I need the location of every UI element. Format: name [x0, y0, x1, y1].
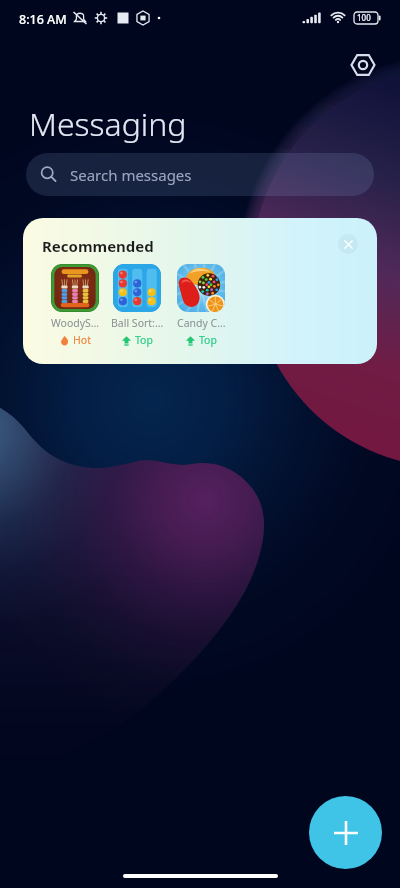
staticText: Recommended: [42, 236, 154, 256]
button[interactable]: Settings: [342, 44, 384, 86]
button[interactable]: WoodyS…: [39, 264, 111, 347]
staticText: Search messages: [70, 165, 192, 185]
staticText: 8:16 AM: [19, 11, 67, 28]
button[interactable]: Dismiss: [338, 234, 358, 254]
staticText: WoodyS…: [51, 316, 100, 330]
button[interactable]: Search messages: [26, 153, 374, 196]
staticText: Messaging: [29, 102, 187, 146]
button[interactable]: New message: [309, 796, 382, 869]
staticText: Candy C…: [177, 316, 226, 330]
staticText: Ball Sort:…: [111, 316, 164, 330]
staticText: 100: [357, 12, 371, 23]
staticText: Hot: [73, 333, 91, 347]
button[interactable]: Candy C…: [165, 264, 237, 347]
button[interactable]: Ball Sort:…: [101, 264, 173, 347]
staticText: Top: [135, 333, 153, 347]
staticText: Top: [199, 333, 217, 347]
